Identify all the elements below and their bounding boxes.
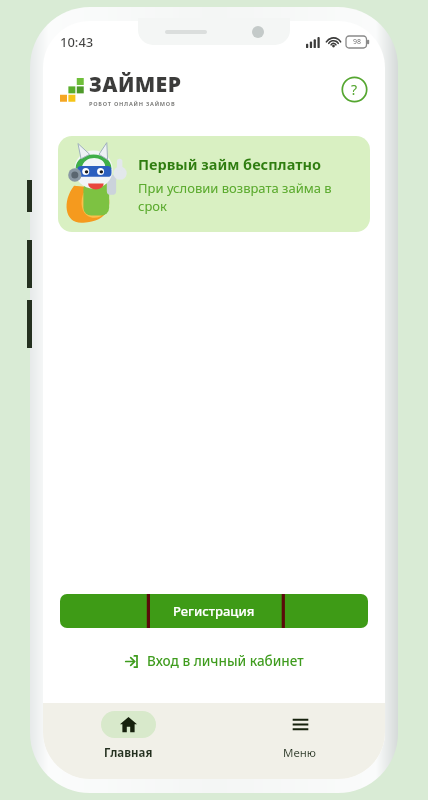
staticText: Первый займ бесплатно	[138, 154, 321, 174]
button[interactable]: ЗАЙМЕР	[60, 70, 182, 108]
staticText: 10:43	[60, 33, 94, 51]
button[interactable]: Главная	[43, 711, 214, 779]
staticText: ?	[351, 80, 358, 99]
staticText: ЗАЙМЕР	[89, 70, 182, 99]
staticText: 98	[353, 37, 362, 47]
button[interactable]: Вход в личный кабинет	[43, 652, 385, 670]
button[interactable]: Регистрация	[60, 594, 368, 628]
staticText: Вход в личный кабинет	[147, 652, 304, 670]
staticText: Регистрация	[173, 602, 255, 620]
staticText: Главная	[104, 745, 153, 761]
button[interactable]: Меню	[214, 711, 385, 779]
staticText: РОБОТ ОНЛАЙН ЗАЙМОВ	[89, 100, 176, 108]
staticText: При условии возврата займа в срок	[138, 179, 358, 215]
staticText: Меню	[283, 745, 317, 761]
button[interactable]: Help	[341, 76, 368, 103]
button[interactable]: Первый займ бесплатно	[58, 136, 370, 232]
